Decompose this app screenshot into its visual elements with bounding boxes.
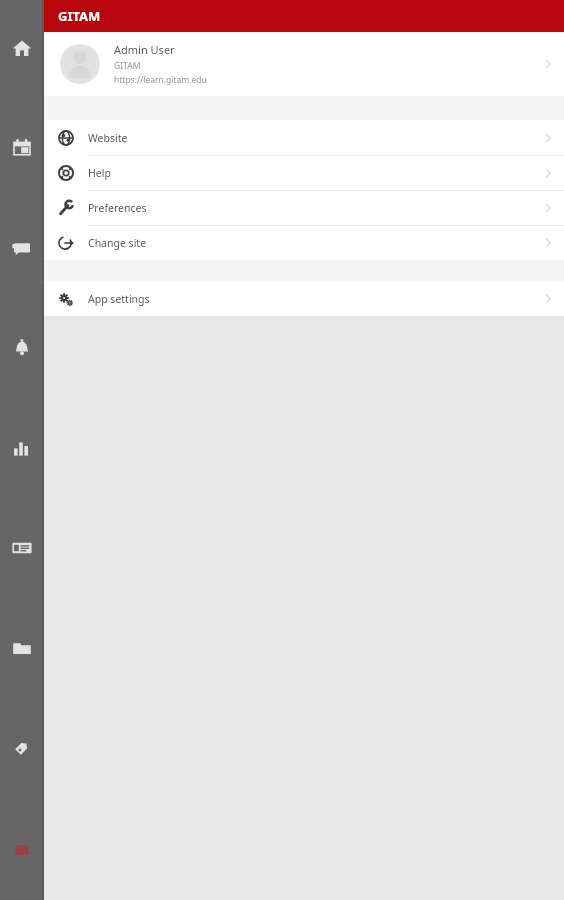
button[interactable]: Profile card [0, 526, 44, 570]
staticText: App settings [88, 292, 532, 306]
button[interactable]: Help [44, 156, 564, 190]
button[interactable]: Files [0, 626, 44, 670]
staticText: Help [88, 166, 532, 180]
button[interactable]: Change site [44, 226, 564, 260]
button[interactable]: Preferences [44, 191, 564, 225]
button[interactable]: Grades [0, 426, 44, 470]
staticText: Admin User [114, 42, 175, 57]
button[interactable]: More [0, 828, 44, 872]
staticText: https://learn.gitam.edu [114, 74, 207, 86]
button[interactable]: Messages [0, 226, 44, 270]
button[interactable]: Notifications [0, 326, 44, 370]
staticText: Website [88, 131, 532, 145]
staticText: GITAM [58, 7, 101, 25]
button[interactable]: Website [44, 120, 564, 155]
button[interactable]: Admin User [44, 32, 564, 96]
staticText: Change site [88, 236, 532, 250]
staticText: Preferences [88, 201, 532, 215]
staticText: GITAM [114, 60, 141, 72]
button[interactable]: Home [0, 26, 44, 70]
button[interactable]: Calendar [0, 126, 44, 170]
button[interactable]: App settings [44, 281, 564, 316]
button[interactable]: Tags [0, 726, 44, 770]
